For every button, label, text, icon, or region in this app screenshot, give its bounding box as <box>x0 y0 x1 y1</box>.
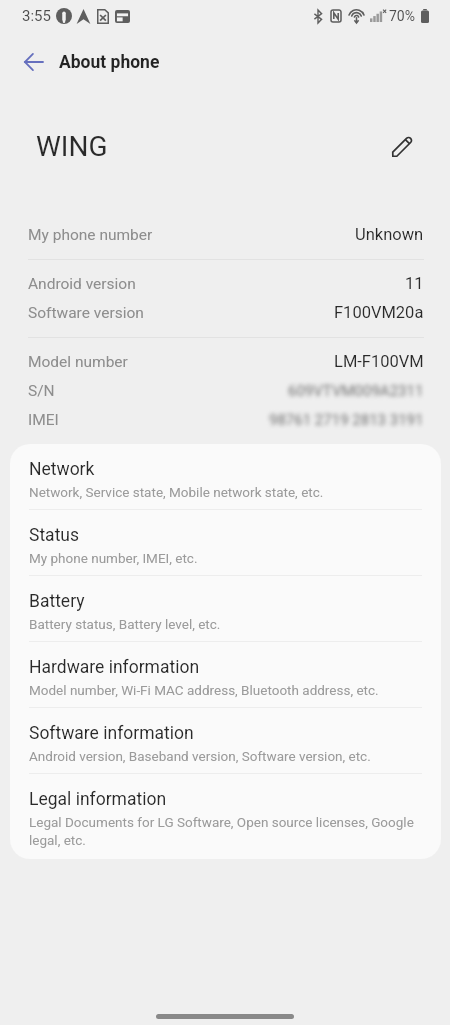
staticText: Model number, Wi-Fi MAC address, Bluetoo… <box>29 681 379 699</box>
staticText: Battery <box>29 591 85 612</box>
staticText: Status <box>29 525 80 546</box>
staticText: IMEI <box>28 411 59 429</box>
button[interactable]: Hardware information <box>10 642 441 707</box>
staticText: Android version, Baseband version, Softw… <box>29 747 371 765</box>
staticText: My phone number <box>28 226 153 244</box>
staticText: Battery status, Battery level, etc. <box>29 615 221 633</box>
button[interactable]: Model number <box>0 347 450 376</box>
button[interactable]: IMEI <box>0 405 450 434</box>
staticText: S/N <box>28 382 55 400</box>
staticText: 3:55 <box>22 7 51 25</box>
staticText: F100VM20a <box>334 303 424 322</box>
button[interactable]: Back <box>9 38 57 86</box>
staticText: Software information <box>29 723 194 744</box>
staticText: 98761 2719 2813 3191 <box>269 411 424 429</box>
button[interactable]: Software version <box>0 298 450 327</box>
staticText: WING <box>36 130 108 163</box>
staticText: Unknown <box>355 225 424 244</box>
button[interactable]: Network <box>10 444 441 509</box>
button[interactable]: Edit device name <box>386 129 420 163</box>
staticText: LM-F100VM <box>334 352 424 371</box>
staticText: Model number <box>28 353 128 371</box>
button[interactable]: My phone number <box>0 220 450 249</box>
staticText: About phone <box>59 52 160 73</box>
button[interactable]: Legal information <box>10 774 441 857</box>
button[interactable]: Software information <box>10 708 441 773</box>
button[interactable]: Status <box>10 510 441 575</box>
staticText: Software version <box>28 304 144 322</box>
staticText: My phone number, IMEI, etc. <box>29 549 198 567</box>
button[interactable]: Android version <box>0 269 450 298</box>
button[interactable]: Battery <box>10 576 441 641</box>
staticText: Network <box>29 459 95 480</box>
staticText: Legal Documents for LG Software, Open so… <box>29 813 422 849</box>
staticText: 70% <box>389 8 415 24</box>
staticText: Legal information <box>29 789 167 810</box>
staticText: 11 <box>405 274 424 293</box>
button[interactable]: S/N <box>0 376 450 405</box>
staticText: 609VTVM009A2311 <box>288 382 424 400</box>
staticText: Network, Service state, Mobile network s… <box>29 483 324 501</box>
staticText: Android version <box>28 275 136 293</box>
staticText: Hardware information <box>29 657 200 678</box>
